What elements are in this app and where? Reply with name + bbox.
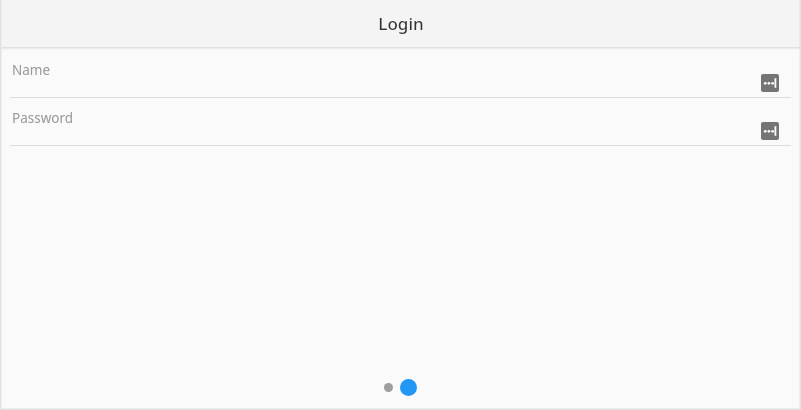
- button[interactable]: More options for Name: [761, 74, 779, 92]
- staticText: Password: [12, 109, 74, 127]
- staticText: Login: [378, 12, 424, 35]
- button[interactable]: Name: [0, 54, 801, 102]
- staticText: Name: [12, 61, 51, 79]
- button[interactable]: More options for Password: [761, 122, 779, 140]
- button[interactable]: Page 1: [384, 383, 393, 392]
- button[interactable]: Page 2, current page: [400, 379, 417, 396]
- button[interactable]: Password: [0, 102, 801, 150]
